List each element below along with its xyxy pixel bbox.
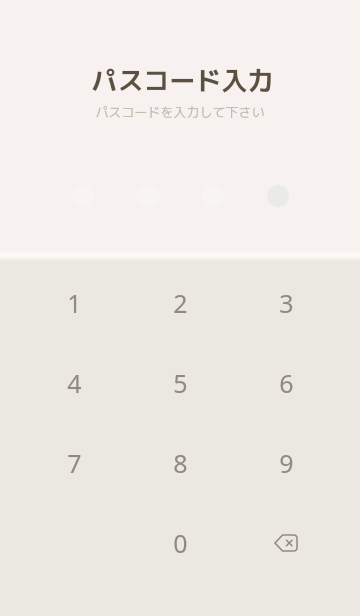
staticText: 8: [173, 446, 188, 480]
button[interactable]: 6: [233, 343, 339, 423]
staticText: パスコードを入力して下さい: [95, 103, 265, 121]
staticText: 9: [279, 446, 294, 480]
button[interactable]: 0: [127, 503, 233, 583]
staticText: 1: [67, 286, 82, 320]
button[interactable]: 9: [233, 423, 339, 503]
staticText: パスコード入力: [91, 62, 274, 98]
button[interactable]: 2: [127, 263, 233, 343]
button[interactable]: 8: [127, 423, 233, 503]
staticText: 2: [173, 286, 188, 320]
button[interactable]: 4: [21, 343, 127, 423]
button[interactable]: 1: [21, 263, 127, 343]
staticText: 6: [279, 366, 294, 400]
staticText: 5: [173, 366, 188, 400]
button[interactable]: Delete: [233, 503, 339, 583]
button[interactable]: 7: [21, 423, 127, 503]
staticText: 3: [279, 286, 294, 320]
button[interactable]: 3: [233, 263, 339, 343]
staticText: 7: [67, 446, 82, 480]
button[interactable]: 5: [127, 343, 233, 423]
staticText: 4: [67, 366, 82, 400]
staticText: 0: [173, 526, 188, 560]
